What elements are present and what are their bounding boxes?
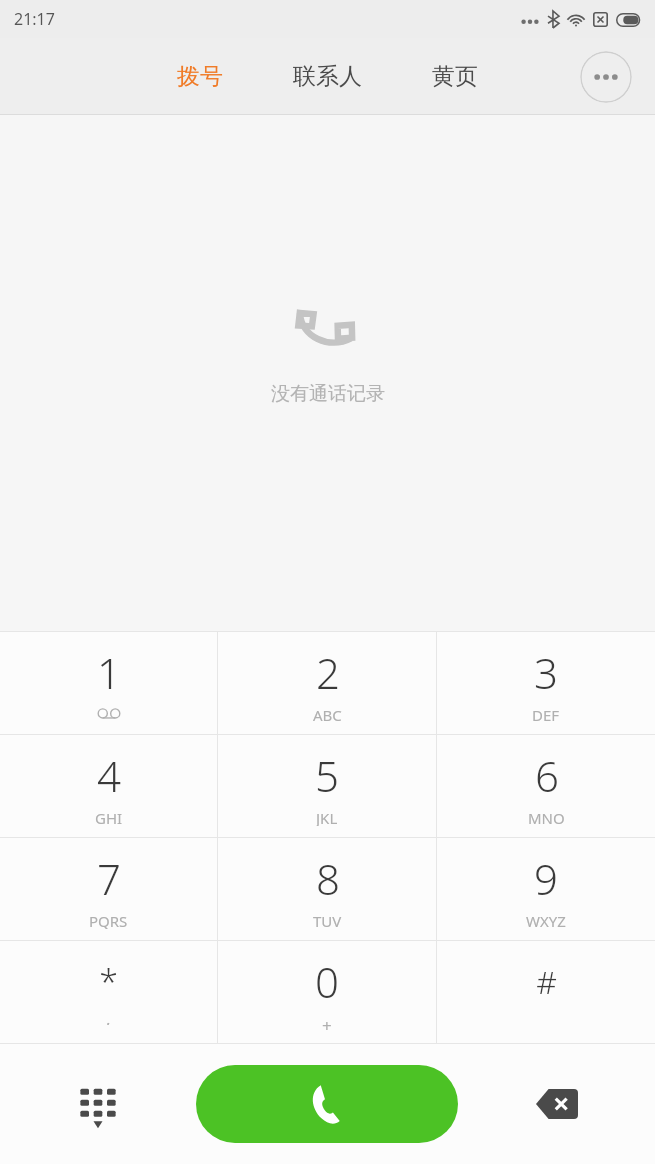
staticText: 5	[315, 747, 339, 804]
button[interactable]: 6	[437, 735, 655, 837]
staticText: ABC	[313, 705, 342, 723]
button[interactable]: 9	[437, 838, 655, 940]
button[interactable]: 拨号	[171, 56, 229, 97]
button[interactable]: *	[0, 941, 217, 1043]
staticText: 4	[97, 747, 121, 804]
staticText: DEF	[532, 705, 560, 723]
staticText: 拨号	[177, 62, 223, 91]
button[interactable]: 黄页	[426, 56, 484, 97]
staticText: 8	[316, 850, 340, 907]
button[interactable]: 联系人	[287, 56, 368, 97]
button[interactable]: 1	[0, 632, 217, 734]
button[interactable]: 2	[218, 632, 436, 734]
staticText: JKL	[316, 808, 338, 826]
staticText: *	[99, 959, 118, 1005]
button[interactable]: Call	[196, 1065, 458, 1143]
staticText: 没有通话记录	[271, 382, 385, 406]
staticText: 9	[534, 850, 558, 907]
staticText: 联系人	[293, 62, 362, 91]
button[interactable]: 8	[218, 838, 436, 940]
staticText: 7	[97, 850, 121, 907]
staticText: GHI	[95, 808, 123, 826]
button[interactable]: Hide keypad	[0, 1044, 196, 1164]
button[interactable]: 0	[218, 941, 436, 1043]
staticText: #	[536, 960, 557, 1004]
staticText: 黄页	[432, 62, 478, 91]
staticText: ,	[106, 1007, 111, 1025]
staticText: 1	[97, 644, 121, 701]
button[interactable]: #	[437, 941, 655, 1043]
button[interactable]: 4	[0, 735, 217, 837]
staticText: PQRS	[89, 911, 128, 929]
staticText: TUV	[313, 911, 342, 929]
button[interactable]: 5	[218, 735, 436, 837]
staticText: MNO	[528, 808, 565, 826]
button[interactable]: Delete	[458, 1044, 655, 1164]
button[interactable]: 3	[437, 632, 655, 734]
button[interactable]: 7	[0, 838, 217, 940]
staticText: 0	[315, 953, 339, 1010]
staticText: +	[322, 1014, 332, 1032]
staticText: 2	[316, 644, 340, 701]
staticText: 6	[535, 747, 559, 804]
staticText: WXYZ	[526, 911, 566, 929]
button[interactable]: More options	[580, 51, 632, 103]
staticText: 3	[534, 644, 558, 701]
staticText: 21:17	[14, 8, 55, 30]
